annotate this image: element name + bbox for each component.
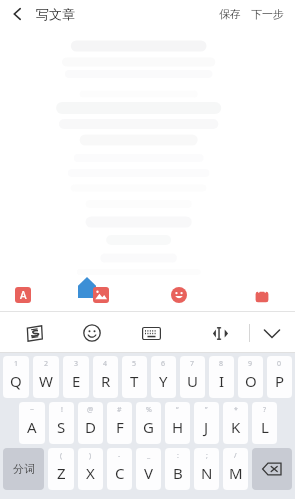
button[interactable]: 分词 — [3, 448, 44, 490]
staticText: 下一步 — [251, 7, 284, 21]
staticText: 保存 — [219, 7, 241, 21]
button[interactable]: / — [223, 448, 248, 490]
staticText: V — [144, 463, 154, 483]
button[interactable]: Backspace — [252, 448, 292, 490]
button[interactable]: ? — [252, 402, 277, 444]
staticText: ? — [263, 405, 267, 415]
button[interactable]: Text format — [9, 281, 37, 309]
button[interactable]: 5 — [122, 356, 147, 398]
button[interactable]: Keyboard layout — [136, 318, 166, 348]
staticText: J — [204, 417, 209, 437]
staticText: Y — [159, 371, 168, 391]
button[interactable]: * — [223, 402, 248, 444]
staticText: E — [72, 371, 81, 391]
staticText: - — [118, 451, 121, 461]
staticText: I — [219, 371, 225, 391]
button[interactable]: Back — [4, 0, 32, 28]
staticText: S — [57, 417, 66, 437]
staticText: F — [116, 417, 124, 437]
button[interactable]: # — [107, 402, 132, 444]
staticText: _ — [147, 451, 151, 461]
staticText: 9 — [248, 359, 253, 369]
staticText: G — [143, 417, 154, 437]
button[interactable]: 7 — [180, 356, 205, 398]
button[interactable]: 保存 — [216, 3, 244, 25]
staticText: 5 — [132, 359, 137, 369]
staticText: L — [261, 417, 269, 437]
staticText: A — [27, 417, 37, 437]
staticText: ! — [61, 405, 63, 415]
staticText: Z — [57, 463, 66, 483]
staticText: P — [275, 371, 285, 391]
staticText: ~ — [30, 405, 35, 415]
button[interactable]: _ — [136, 448, 161, 490]
button[interactable]: Emoji — [165, 281, 193, 309]
button[interactable]: 6 — [151, 356, 176, 398]
staticText: O — [245, 371, 257, 391]
staticText: : — [177, 451, 179, 461]
staticText: ( — [60, 451, 63, 461]
button[interactable]: 3 — [63, 356, 89, 398]
button[interactable]: ) — [78, 448, 103, 490]
staticText: N — [201, 463, 213, 483]
staticText: 7 — [190, 359, 195, 369]
staticText: * — [234, 405, 238, 415]
staticText: 1 — [14, 359, 19, 369]
staticText: @ — [87, 405, 94, 415]
button[interactable]: “ — [165, 402, 190, 444]
staticText: 写文章 — [36, 6, 75, 22]
staticText: T — [130, 371, 139, 391]
staticText: 3 — [74, 359, 79, 369]
button[interactable]: 4 — [93, 356, 118, 398]
staticText: 分词 — [13, 462, 35, 476]
button[interactable]: Hide keyboard — [257, 318, 287, 348]
staticText: X — [86, 463, 95, 483]
staticText: 4 — [103, 359, 108, 369]
button[interactable]: Products — [248, 281, 276, 309]
button[interactable]: - — [107, 448, 132, 490]
button[interactable]: Move cursor — [205, 318, 235, 348]
staticText: ; — [206, 451, 208, 461]
staticText: 2 — [44, 359, 49, 369]
button[interactable]: 1 — [3, 356, 29, 398]
staticText: K — [231, 417, 241, 437]
button[interactable]: 0 — [267, 356, 292, 398]
staticText: W — [39, 371, 53, 391]
staticText: U — [187, 371, 198, 391]
staticText: ) — [89, 451, 92, 461]
staticText: Q — [10, 371, 22, 391]
button[interactable]: Insert image — [87, 281, 115, 309]
staticText: 8 — [219, 359, 224, 369]
button[interactable]: ; — [194, 448, 219, 490]
staticText: 6 — [161, 359, 166, 369]
staticText: C — [115, 463, 125, 483]
staticText: ” — [205, 405, 208, 415]
button[interactable]: Sogou input — [20, 319, 48, 347]
button[interactable]: @ — [78, 402, 103, 444]
button[interactable]: ! — [49, 402, 74, 444]
button[interactable]: % — [136, 402, 161, 444]
staticText: “ — [176, 405, 179, 415]
button[interactable]: ” — [194, 402, 219, 444]
staticText: 0 — [277, 359, 282, 369]
button[interactable]: 9 — [238, 356, 263, 398]
staticText: A — [20, 288, 27, 302]
staticText: % — [146, 405, 152, 415]
staticText: B — [173, 463, 183, 483]
button[interactable]: 下一步 — [248, 3, 287, 25]
button[interactable]: ~ — [19, 402, 45, 444]
staticText: M — [229, 463, 243, 483]
staticText: D — [85, 417, 96, 437]
button[interactable]: Emoticons — [78, 319, 106, 347]
staticText: R — [101, 371, 111, 391]
button[interactable]: 8 — [209, 356, 234, 398]
staticText: # — [117, 405, 122, 415]
button[interactable]: : — [165, 448, 190, 490]
button[interactable]: 2 — [33, 356, 59, 398]
staticText: / — [234, 451, 237, 461]
button[interactable]: ( — [48, 448, 74, 490]
staticText: H — [172, 417, 184, 437]
